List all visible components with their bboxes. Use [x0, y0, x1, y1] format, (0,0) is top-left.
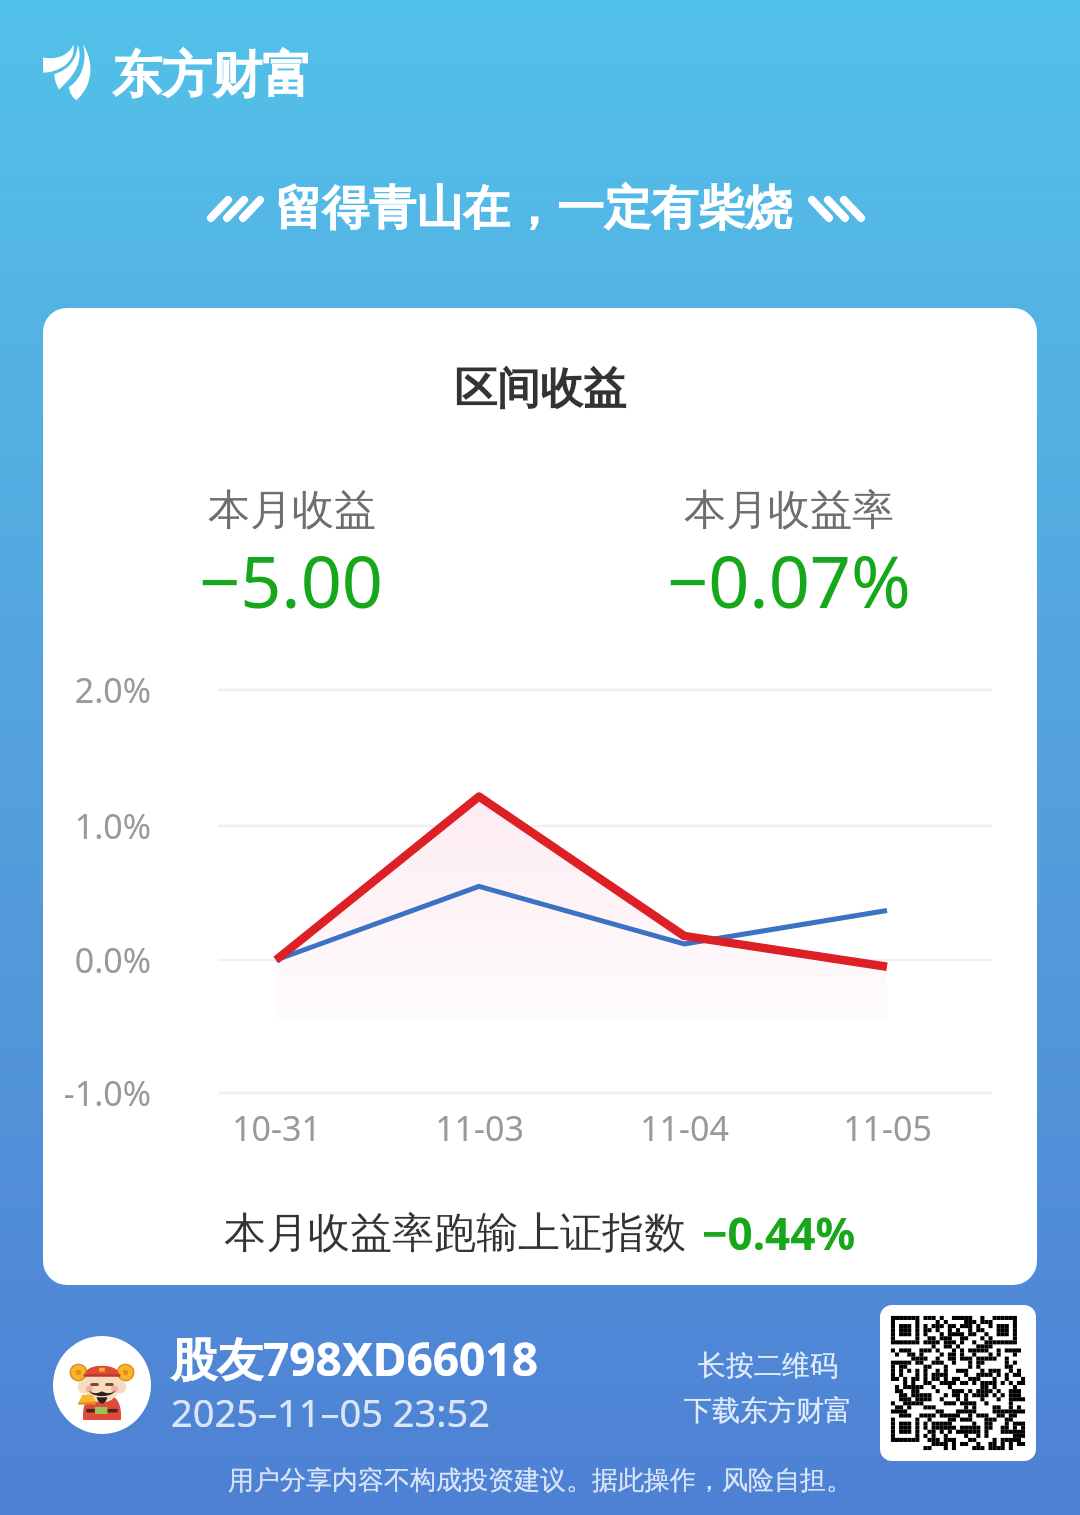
button[interactable]: 东方财富 — [42, 41, 312, 104]
staticText: −0.44% — [702, 1203, 856, 1263]
button[interactable]: User avatar — [53, 1336, 151, 1434]
button[interactable]: 区间收益 — [43, 308, 1037, 1285]
staticText: -1.0% — [63, 1070, 151, 1116]
staticText: 2025–11–05 23:52 — [171, 1386, 490, 1438]
staticText: 长按二维码 — [698, 1348, 838, 1383]
button[interactable]: 长按二维码 — [684, 1348, 852, 1428]
staticText: −5.00 — [199, 531, 384, 629]
button[interactable]: User avatar — [53, 1327, 538, 1442]
staticText: 本月收益 — [208, 484, 376, 537]
staticText: 下载东方财富 — [684, 1393, 852, 1428]
staticText: 股友798XD66018 — [171, 1327, 538, 1390]
staticText: 本月收益率跑输上证指数 — [224, 1207, 686, 1260]
staticText: 用户分享内容不构成投资建议。据此操作，风险自担。 — [0, 1464, 1080, 1497]
staticText: −0.07% — [667, 531, 911, 629]
staticText: 区间收益 — [43, 362, 1037, 416]
staticText: 0.0% — [74, 937, 151, 983]
staticText: 本月收益率 — [684, 484, 894, 537]
staticText: 11-05 — [843, 1105, 932, 1151]
staticText: 11-03 — [435, 1105, 524, 1151]
staticText: 东方财富 — [112, 44, 312, 107]
staticText: 10-31 — [232, 1105, 321, 1151]
staticText: 11-04 — [640, 1105, 729, 1151]
staticText: 2.0% — [74, 667, 151, 713]
staticText: 留得青山在，一定有柴烧 — [275, 179, 792, 238]
staticText: 1.0% — [74, 803, 151, 849]
button[interactable]: QR code to download app — [880, 1305, 1036, 1461]
